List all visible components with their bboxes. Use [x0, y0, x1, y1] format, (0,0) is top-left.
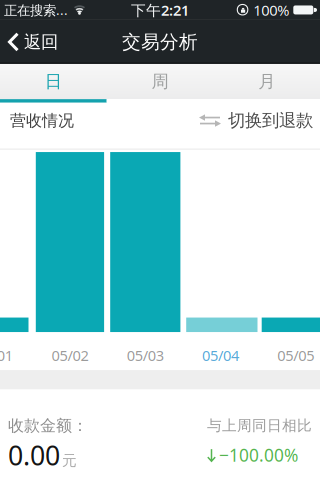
staticText: 下午2:21	[131, 0, 189, 20]
staticText: 与上周同日相比	[207, 417, 312, 435]
staticText: 收款金额：	[8, 416, 88, 435]
staticText: 05/05	[277, 345, 314, 365]
staticText: 05/03	[127, 345, 164, 365]
button[interactable]: 返回	[0, 20, 58, 64]
button[interactable]: 日	[0, 64, 107, 99]
staticText: 05/02	[51, 345, 88, 365]
staticText: 日	[45, 71, 62, 92]
button[interactable]: 周	[107, 64, 213, 99]
staticText: 营收情况	[10, 111, 74, 130]
staticText: 05/04	[202, 345, 239, 365]
staticText: −100.00%	[219, 444, 298, 467]
staticText: 100%	[253, 0, 289, 20]
staticText: 正在搜索...	[4, 1, 68, 19]
staticText: 交易分析	[122, 30, 198, 53]
staticText: 周	[151, 71, 168, 92]
staticText: 切换到退款	[228, 110, 313, 131]
staticText: 0.00	[8, 437, 60, 473]
button[interactable]: 月	[213, 64, 320, 99]
staticText: 元	[62, 452, 77, 470]
staticText: 返回	[24, 31, 58, 53]
staticText: 05/01	[0, 345, 13, 365]
staticText: 月	[258, 71, 275, 92]
button[interactable]: 切换到退款	[199, 110, 313, 131]
